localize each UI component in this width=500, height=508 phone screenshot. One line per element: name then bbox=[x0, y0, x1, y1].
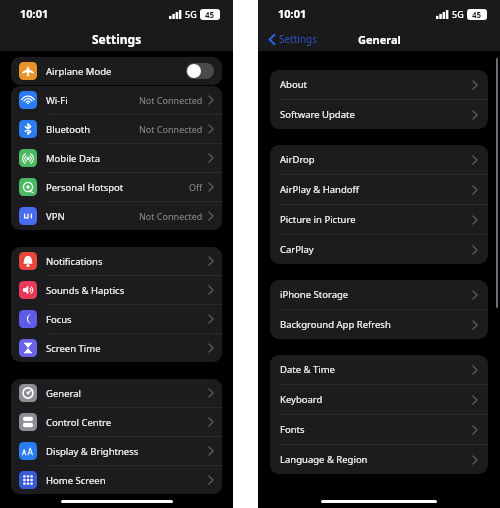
button[interactable]: Picture in Picture bbox=[270, 205, 488, 234]
staticText: Display & Brightness bbox=[46, 445, 208, 458]
staticText: AirPlay & Handoff bbox=[280, 183, 472, 196]
staticText: Airplane Mode bbox=[46, 65, 186, 78]
staticText: Fonts bbox=[280, 423, 472, 436]
staticText: 10:01 bbox=[20, 6, 49, 21]
staticText: Settings bbox=[92, 31, 142, 47]
button[interactable]: General bbox=[11, 379, 222, 407]
staticText: 5G bbox=[185, 8, 197, 20]
staticText: Software Update bbox=[280, 108, 472, 121]
staticText: General bbox=[46, 387, 208, 400]
button[interactable]: Sounds & Haptics bbox=[11, 276, 222, 304]
button[interactable]: Date & Time bbox=[270, 355, 488, 384]
button[interactable]: CarPlay bbox=[270, 235, 488, 264]
button[interactable]: Keyboard bbox=[270, 385, 488, 414]
staticText: Settings bbox=[279, 32, 318, 46]
button[interactable]: About bbox=[270, 70, 488, 99]
button[interactable]: Background App Refresh bbox=[270, 310, 488, 339]
staticText: Control Centre bbox=[46, 416, 208, 429]
staticText: CarPlay bbox=[280, 243, 472, 256]
staticText: Mobile Data bbox=[46, 152, 208, 165]
button[interactable]: Notifications bbox=[11, 247, 222, 275]
button[interactable]: Fonts bbox=[270, 415, 488, 444]
staticText: Not Connected bbox=[139, 94, 203, 106]
staticText: General bbox=[358, 32, 401, 47]
staticText: Not Connected bbox=[139, 123, 203, 135]
staticText: Focus bbox=[46, 313, 208, 326]
staticText: Keyboard bbox=[280, 393, 472, 406]
button[interactable]: Airplane Mode bbox=[11, 57, 222, 85]
button[interactable]: Screen Time bbox=[11, 334, 222, 362]
button[interactable]: Display & Brightness bbox=[11, 437, 222, 465]
staticText: Bluetooth bbox=[46, 123, 139, 136]
staticText: 45 bbox=[472, 9, 482, 20]
staticText: About bbox=[280, 78, 472, 91]
staticText: Background App Refresh bbox=[280, 318, 472, 331]
button[interactable]: Airplane Mode toggle bbox=[186, 63, 214, 79]
staticText: Picture in Picture bbox=[280, 213, 472, 226]
staticText: Date & Time bbox=[280, 363, 472, 376]
button[interactable]: Mobile Data bbox=[11, 144, 222, 172]
button[interactable]: Language & Region bbox=[270, 445, 488, 474]
staticText: Off bbox=[189, 181, 203, 193]
staticText: Language & Region bbox=[280, 453, 472, 466]
button[interactable]: AirPlay & Handoff bbox=[270, 175, 488, 204]
staticText: Home Screen bbox=[46, 474, 208, 487]
button[interactable]: VPN bbox=[11, 202, 222, 230]
button[interactable]: AirDrop bbox=[270, 145, 488, 174]
staticText: Not Connected bbox=[139, 210, 203, 222]
staticText: AirDrop bbox=[280, 153, 472, 166]
button[interactable]: Personal Hotspot bbox=[11, 173, 222, 201]
staticText: Personal Hotspot bbox=[46, 181, 189, 194]
button[interactable]: Control Centre bbox=[11, 408, 222, 436]
staticText: Notifications bbox=[46, 255, 208, 268]
staticText: VPN bbox=[46, 210, 139, 223]
button[interactable]: Settings bbox=[269, 32, 318, 46]
staticText: Wi-Fi bbox=[46, 94, 139, 107]
staticText: iPhone Storage bbox=[280, 288, 472, 301]
button[interactable]: Home Screen bbox=[11, 466, 222, 494]
button[interactable]: Software Update bbox=[270, 100, 488, 129]
button[interactable]: Bluetooth bbox=[11, 115, 222, 143]
staticText: Screen Time bbox=[46, 342, 208, 355]
staticText: Sounds & Haptics bbox=[46, 284, 208, 297]
staticText: 10:01 bbox=[278, 6, 307, 21]
staticText: 45 bbox=[205, 9, 215, 20]
button[interactable]: Wi-Fi bbox=[11, 86, 222, 114]
button[interactable]: Focus bbox=[11, 305, 222, 333]
button[interactable]: iPhone Storage bbox=[270, 280, 488, 309]
staticText: 5G bbox=[452, 8, 464, 20]
